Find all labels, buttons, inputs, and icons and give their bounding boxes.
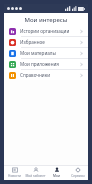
staticText: Избранное (20, 39, 80, 45)
button[interactable]: Мои материалы (4, 48, 88, 58)
staticText: Справочники (20, 72, 80, 78)
button[interactable]: Избранное (4, 37, 88, 47)
button[interactable]: Мои приложения (4, 59, 88, 69)
staticText: Мои интересы (24, 16, 68, 24)
button[interactable]: Мои интересы (46, 165, 67, 180)
staticText: Новости (8, 174, 21, 178)
staticText: Истории организации (20, 28, 80, 34)
button[interactable]: Мой кабинет (25, 165, 46, 180)
staticText: Мои приложения (20, 61, 80, 67)
staticText: Мой кабинет (25, 174, 46, 178)
staticText: Мои интересы (46, 174, 67, 178)
button[interactable]: Новости (4, 165, 25, 180)
button[interactable]: Справочники (4, 70, 88, 80)
staticText: Сервисы (71, 174, 85, 178)
button[interactable]: Истории организации (4, 26, 88, 36)
staticText: Мои материалы (20, 50, 80, 56)
button[interactable]: Сервисы (67, 165, 88, 180)
